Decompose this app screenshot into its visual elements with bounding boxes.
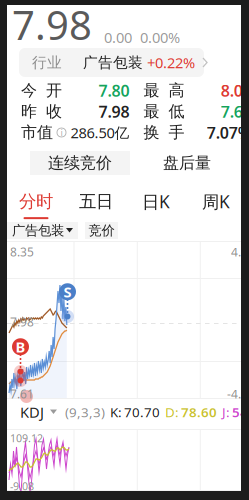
staticText: 换 xyxy=(143,123,159,142)
staticText: 7.07% xyxy=(207,122,249,143)
staticText: 盘后量 xyxy=(163,153,211,173)
staticText: 最 xyxy=(143,81,159,100)
staticText: i xyxy=(60,126,62,139)
staticText: KDJ xyxy=(20,402,44,422)
staticText: 市值 xyxy=(21,123,53,142)
staticText: -9.08 xyxy=(10,479,34,493)
staticText: 竞价 xyxy=(88,222,114,239)
staticText: 周K xyxy=(202,190,230,213)
staticText: J: xyxy=(222,403,230,421)
staticText: 高 xyxy=(168,81,184,100)
staticText: 最 xyxy=(143,102,159,121)
staticText: 70.70 xyxy=(124,403,160,421)
staticText: 7.98 xyxy=(12,0,92,51)
staticText: 7.80 xyxy=(98,80,129,101)
staticText: 连续竞价 xyxy=(48,153,112,173)
staticText: 54.90 xyxy=(232,403,249,421)
staticText: 收 xyxy=(46,102,62,121)
staticText: 昨 xyxy=(21,102,37,121)
button[interactable]: 盘后量 xyxy=(137,151,237,175)
staticText: 78.60 xyxy=(181,403,217,421)
staticText: 分时 xyxy=(19,191,53,212)
button[interactable]: 连续竞价 xyxy=(30,151,130,175)
staticText: 7.98 xyxy=(10,314,34,330)
staticText: 手 xyxy=(168,123,184,142)
staticText: 行业 xyxy=(32,53,62,71)
button[interactable]: 广告包装 xyxy=(7,222,78,239)
staticText: 0.00% xyxy=(140,27,180,47)
button[interactable]: 行业 xyxy=(19,48,204,77)
staticText: 286.50亿 xyxy=(70,123,129,142)
staticText: -4.64% xyxy=(227,386,249,402)
staticText: B xyxy=(15,337,25,356)
staticText: 7.61 xyxy=(10,386,34,402)
button[interactable]: 周K xyxy=(186,189,246,221)
staticText: S xyxy=(63,282,71,301)
staticText: 今 xyxy=(21,81,37,100)
staticText: 8.35 xyxy=(10,244,34,260)
staticText: 低 xyxy=(168,102,184,121)
staticText: 8.02 xyxy=(221,80,249,101)
button[interactable]: 竞价 xyxy=(85,222,118,239)
button[interactable]: KDJ xyxy=(20,402,57,422)
staticText: 广告包装 xyxy=(12,222,64,239)
button[interactable]: 日K xyxy=(126,189,186,221)
staticText: 109.12 xyxy=(10,431,43,445)
button[interactable]: 分时 xyxy=(6,189,66,221)
staticText: 开 xyxy=(46,81,62,100)
button[interactable]: 五日 xyxy=(66,189,126,221)
staticText: 五日 xyxy=(79,191,113,212)
staticText: 广告包装 xyxy=(83,53,143,71)
staticText: K: xyxy=(110,403,122,421)
staticText: 7.98 xyxy=(98,101,129,122)
staticText: 7.60 xyxy=(221,101,249,122)
staticText: 日K xyxy=(142,190,170,213)
staticText: (9,3,3) xyxy=(65,403,105,421)
staticText: 0.00 xyxy=(104,27,132,47)
staticText: D: xyxy=(165,403,179,421)
staticText: 4.64% xyxy=(231,244,249,260)
staticText: +0.22% xyxy=(147,53,195,72)
